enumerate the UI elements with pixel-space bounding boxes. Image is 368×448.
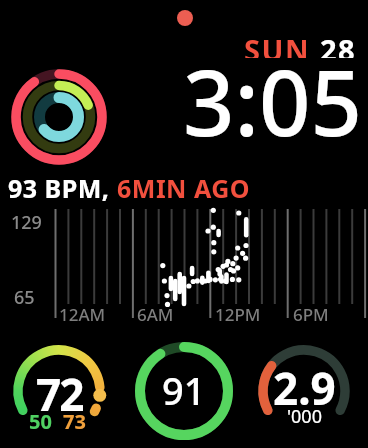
staticText: 12AM	[59, 303, 106, 326]
staticText: 73	[63, 408, 86, 432]
button[interactable]	[140, 55, 362, 157]
staticText: 50	[29, 408, 52, 432]
staticText: 72	[36, 364, 83, 412]
staticText: 6MIN AGO	[117, 171, 251, 205]
staticText: 12PM	[215, 303, 261, 326]
button[interactable]: 93 BPM,	[8, 171, 251, 205]
staticText: 129	[11, 210, 42, 235]
staticText: 93 BPM,	[8, 171, 117, 205]
staticText: 6AM	[137, 303, 174, 326]
staticText: '000	[287, 404, 322, 426]
button[interactable]	[135, 342, 233, 440]
staticText: 65	[14, 285, 35, 310]
staticText: 2.9	[273, 358, 336, 406]
staticText: 28	[320, 30, 357, 58]
button[interactable]: SUN	[187, 30, 357, 58]
staticText: SUN	[244, 30, 320, 58]
staticText: 91	[162, 364, 206, 412]
staticText: 3:05	[183, 40, 362, 152]
staticText: 6PM	[293, 303, 329, 326]
button[interactable]	[255, 342, 353, 440]
button[interactable]	[0, 200, 368, 325]
button[interactable]	[10, 342, 108, 440]
button[interactable]	[8, 66, 110, 168]
